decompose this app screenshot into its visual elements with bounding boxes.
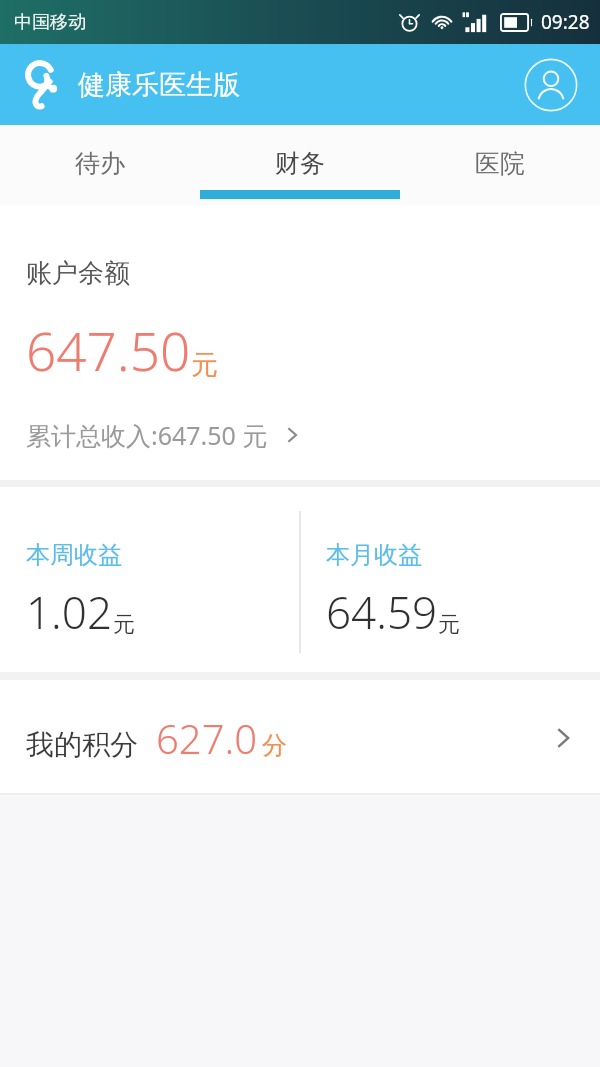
staticText: 分 bbox=[262, 730, 287, 761]
button[interactable]: 待办 bbox=[0, 125, 200, 205]
staticText: 647.50 bbox=[26, 314, 191, 386]
staticText: 财务 bbox=[275, 148, 325, 179]
staticText: 元 bbox=[191, 348, 218, 382]
button[interactable]: 财务 bbox=[200, 125, 400, 205]
staticText: 64.59 bbox=[326, 582, 438, 642]
staticText: 1.02 bbox=[26, 582, 113, 642]
button[interactable]: 本月收益 bbox=[300, 487, 600, 672]
button[interactable]: 本周收益 bbox=[0, 487, 300, 672]
staticText: 本周收益 bbox=[26, 540, 122, 570]
staticText: 我的积分 bbox=[26, 727, 138, 762]
staticText: 元 bbox=[113, 611, 135, 639]
staticText: 健康乐医生版 bbox=[78, 68, 240, 102]
staticText: 账户余额 bbox=[26, 257, 130, 290]
button[interactable]: 我的积分 bbox=[0, 680, 600, 795]
staticText: 本月收益 bbox=[326, 540, 422, 570]
button[interactable]: 累计总收入:647.50 元 bbox=[22, 412, 312, 458]
button[interactable]: 医院 bbox=[400, 125, 600, 205]
staticText: 元 bbox=[438, 611, 460, 639]
staticText: 医院 bbox=[475, 148, 525, 179]
button[interactable]: Profile bbox=[523, 57, 579, 113]
staticText: 待办 bbox=[75, 148, 125, 179]
staticText: 中国移动 bbox=[14, 11, 86, 34]
staticText: 627.0 bbox=[156, 711, 258, 765]
staticText: 累计总收入:647.50 元 bbox=[26, 418, 268, 452]
staticText: 09:28 bbox=[541, 9, 590, 35]
